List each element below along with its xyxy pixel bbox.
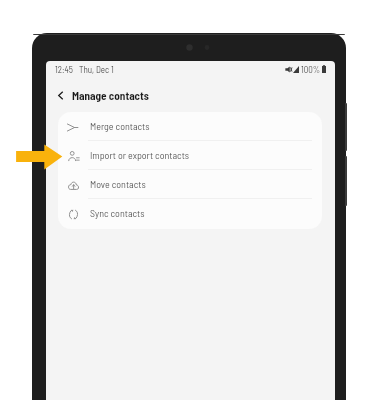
button[interactable]: Merge contacts [58,112,322,141]
staticText: Import or export contacts [90,149,190,161]
staticText: 12:45 [55,64,73,75]
staticText: Move contacts [90,178,146,190]
staticText: Thu, Dec 1 [79,64,114,75]
staticText: 100% [301,64,321,75]
button[interactable]: Move contacts [58,170,322,199]
staticText: Merge contacts [90,120,150,132]
button[interactable]: Import or export contacts [58,141,322,170]
staticText: Manage contacts [72,89,149,102]
staticText: Sync contacts [90,207,145,219]
button[interactable]: Sync contacts [58,199,322,228]
button[interactable]: Navigate up [52,86,68,104]
